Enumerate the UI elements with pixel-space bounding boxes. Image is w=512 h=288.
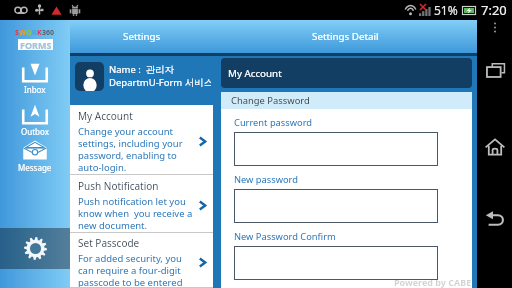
button[interactable]: My Account — [221, 58, 472, 88]
button[interactable] — [234, 189, 438, 223]
button[interactable]: Home — [478, 130, 512, 164]
button[interactable]: Recents — [478, 53, 512, 87]
staticText: New password — [234, 173, 298, 186]
button[interactable]: Settings — [0, 228, 70, 269]
staticText: Name : 관리자 — [109, 63, 175, 76]
staticText: Change your account settings, including … — [78, 125, 198, 174]
staticText: Push Notification — [78, 179, 159, 193]
staticText: Settings — [123, 30, 161, 43]
button[interactable]: Message — [0, 139, 70, 173]
staticText: K — [37, 28, 42, 38]
staticText: 7:20 — [481, 1, 507, 19]
staticText: R — [32, 28, 37, 38]
staticText: For added security, you can require a fo… — [78, 252, 198, 288]
button[interactable]: Push Notification — [70, 175, 213, 233]
staticText: DepartmU-Form 서비스 — [109, 76, 211, 89]
staticText: S — [15, 28, 19, 38]
button[interactable] — [234, 132, 438, 166]
button[interactable]: Name : 관리자 — [75, 62, 211, 105]
staticText: 51% — [434, 2, 458, 18]
staticText: Current password — [234, 116, 313, 129]
staticText: Change Password — [231, 94, 310, 107]
button[interactable]: Set Passcode — [70, 233, 213, 288]
button[interactable]: My Account — [70, 105, 213, 175]
button[interactable]: Outbox — [0, 103, 70, 137]
staticText: FORMS — [20, 39, 52, 50]
staticText: Settings Detail — [312, 30, 379, 43]
staticText: Inbox — [24, 84, 46, 95]
staticText: My Account — [78, 109, 133, 123]
staticText: O — [26, 28, 32, 38]
staticText: Outbox — [21, 126, 49, 137]
button[interactable]: Back — [478, 201, 512, 235]
button[interactable] — [234, 246, 438, 280]
staticText: W — [19, 28, 26, 38]
staticText: Set Passcode — [78, 236, 140, 250]
staticText: New Password Confirm — [234, 230, 336, 243]
staticText: My Account — [228, 67, 282, 80]
staticText: Push notification let you know when you … — [78, 195, 198, 232]
staticText: Powered by CABE — [394, 276, 472, 288]
staticText: 360 — [42, 28, 55, 38]
staticText: Message — [18, 162, 52, 173]
button[interactable]: Inbox — [0, 61, 70, 95]
